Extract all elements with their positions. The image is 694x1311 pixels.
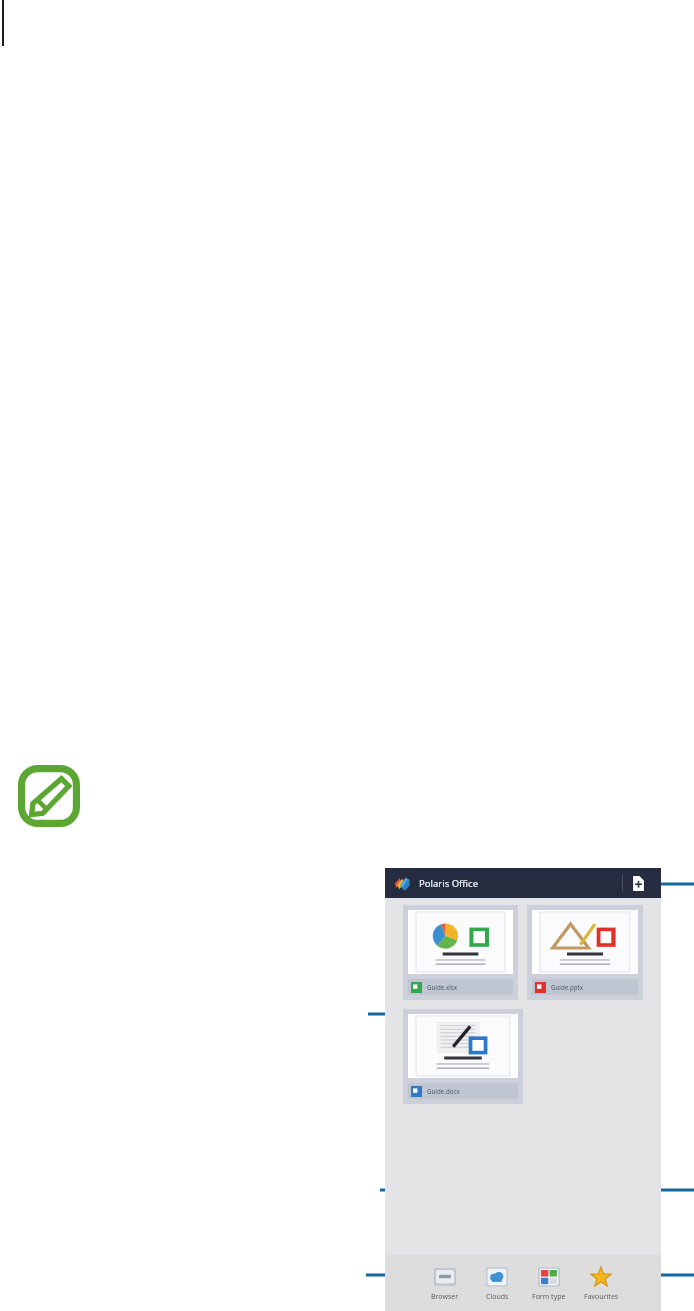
staticText: Form type — [532, 1292, 566, 1302]
staticText: Clouds — [486, 1292, 509, 1302]
button[interactable]: New document — [623, 868, 653, 898]
button[interactable]: Guide.pptx — [527, 905, 643, 1000]
button[interactable]: Guide.docx — [403, 1009, 523, 1104]
staticText: Browser — [431, 1292, 459, 1302]
staticText: Guide.docx — [427, 1087, 460, 1095]
staticText: Favourites — [584, 1292, 619, 1302]
button[interactable]: Guide.xlsx — [403, 905, 518, 1000]
button[interactable]: Clouds — [471, 1255, 523, 1311]
button[interactable]: Form type — [523, 1255, 575, 1311]
staticText: Guide.pptx — [551, 983, 583, 991]
staticText: Guide.xlsx — [427, 983, 457, 991]
staticText: Polaris Office — [419, 877, 478, 890]
button[interactable]: Browser — [419, 1255, 471, 1311]
button[interactable]: Favourites — [575, 1255, 627, 1311]
